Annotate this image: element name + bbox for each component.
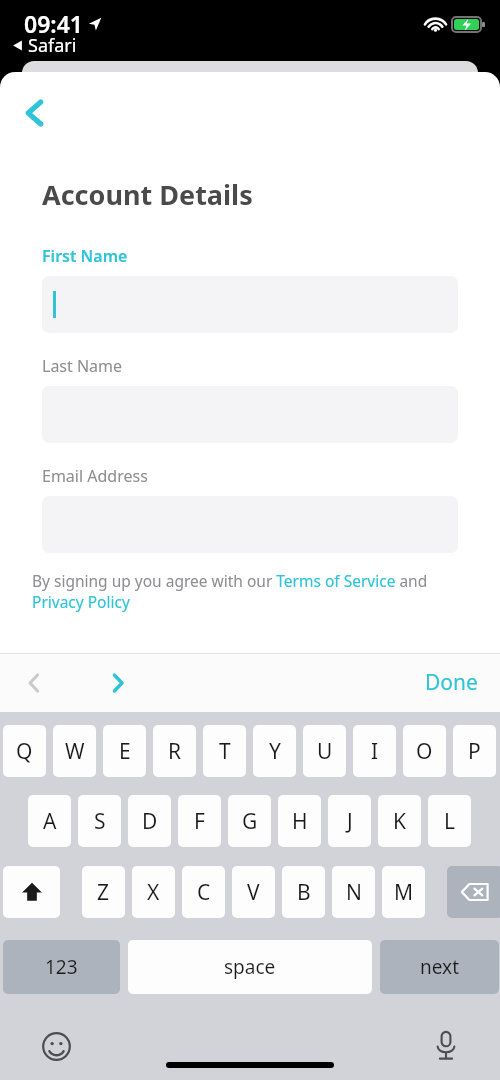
- staticText: next: [420, 954, 459, 980]
- button[interactable]: P: [453, 725, 496, 777]
- staticText: Account Details: [42, 176, 253, 213]
- staticText: V: [247, 878, 260, 907]
- staticText: Z: [97, 878, 110, 907]
- staticText: R: [168, 737, 182, 766]
- staticText: Last Name: [42, 355, 123, 377]
- button[interactable]: next: [380, 940, 499, 994]
- button[interactable]: A: [28, 795, 71, 847]
- button[interactable]: B: [282, 866, 325, 918]
- staticText: 09:41: [24, 8, 83, 39]
- button[interactable]: M: [382, 866, 425, 918]
- staticText: K: [393, 807, 406, 836]
- button[interactable]: D: [128, 795, 171, 847]
- staticText: Safari: [28, 33, 77, 58]
- staticText: P: [468, 737, 481, 766]
- staticText: E: [119, 737, 131, 766]
- button[interactable]: H: [278, 795, 321, 847]
- staticText: D: [142, 807, 158, 836]
- button[interactable]: E: [103, 725, 146, 777]
- staticText: 123: [45, 954, 78, 980]
- staticText: L: [444, 807, 456, 836]
- button[interactable]: Emoji: [34, 1024, 78, 1068]
- staticText: C: [197, 878, 211, 907]
- button[interactable]: F: [178, 795, 221, 847]
- staticText: U: [317, 737, 333, 766]
- staticText: S: [94, 807, 106, 836]
- button[interactable]: R: [153, 725, 196, 777]
- button[interactable]: O: [403, 725, 446, 777]
- button[interactable]: Done: [413, 660, 490, 705]
- staticText: J: [347, 807, 353, 836]
- button[interactable]: Dictation: [424, 1024, 468, 1068]
- staticText: Done: [425, 668, 478, 697]
- button[interactable]: N: [332, 866, 375, 918]
- staticText: W: [65, 737, 85, 766]
- button[interactable]: Previous field: [10, 659, 58, 707]
- button[interactable]: I: [353, 725, 396, 777]
- staticText: B: [297, 878, 311, 907]
- staticText: O: [416, 737, 433, 766]
- staticText: space: [224, 954, 276, 980]
- button[interactable]: L: [428, 795, 471, 847]
- staticText: N: [346, 878, 362, 907]
- button[interactable]: U: [303, 725, 346, 777]
- staticText: Q: [16, 737, 33, 766]
- button[interactable]: Next field: [94, 659, 142, 707]
- button[interactable]: Shift: [3, 866, 60, 918]
- staticText: G: [242, 807, 258, 836]
- button[interactable]: 123: [3, 940, 120, 994]
- button[interactable]: Z: [82, 866, 125, 918]
- staticText: F: [194, 807, 205, 836]
- button[interactable]: K: [378, 795, 421, 847]
- button[interactable]: X: [132, 866, 175, 918]
- button[interactable]: W: [53, 725, 96, 777]
- staticText: H: [292, 807, 308, 836]
- staticText: A: [43, 807, 57, 836]
- button[interactable]: Delete: [447, 866, 500, 918]
- button[interactable]: Q: [3, 725, 46, 777]
- button[interactable]: C: [182, 866, 225, 918]
- button[interactable]: T: [203, 725, 246, 777]
- button[interactable]: V: [232, 866, 275, 918]
- staticText: Y: [269, 737, 281, 766]
- staticText: M: [394, 878, 414, 907]
- button[interactable]: S: [78, 795, 121, 847]
- button[interactable]: Back: [12, 90, 58, 136]
- staticText: First Name: [42, 245, 128, 267]
- staticText: I: [371, 737, 379, 766]
- staticText: X: [147, 878, 160, 907]
- button[interactable]: G: [228, 795, 271, 847]
- button[interactable]: J: [328, 795, 371, 847]
- button[interactable]: space: [128, 940, 372, 994]
- staticText: By signing up you agree with our Terms o…: [32, 570, 448, 613]
- button[interactable]: [42, 276, 458, 333]
- staticText: Email Address: [42, 465, 148, 487]
- button[interactable]: Y: [253, 725, 296, 777]
- staticText: T: [219, 737, 231, 766]
